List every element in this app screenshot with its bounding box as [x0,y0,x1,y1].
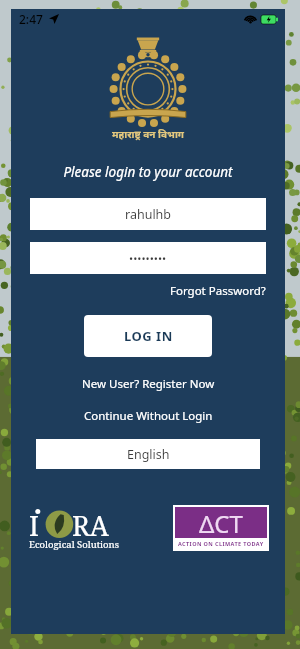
button[interactable]: Continue Without Login [76,405,221,427]
button[interactable]: ••••••••• [30,242,266,274]
staticText: I [29,507,39,544]
staticText: RA [72,507,109,544]
button[interactable]: Forgot Password? [167,281,269,301]
staticText: Forgot Password? [170,283,266,299]
staticText: LOG IN [124,327,173,345]
staticText: 2:47 [19,11,43,27]
button[interactable]: English [36,439,260,469]
staticText: ••••••••• [129,251,167,266]
staticText: ACTION ON CLIMATE TODAY [178,540,264,547]
button[interactable]: New User? Register Now [74,373,223,395]
staticText: New User? Register Now [82,376,215,392]
button[interactable]: LOG IN [84,315,212,357]
staticText: Please login to your account [63,163,233,181]
button[interactable]: rahulhb [30,198,266,230]
staticText: ΔCT [199,507,243,538]
staticText: Ecological Solutions [29,538,119,551]
staticText: महाराष्ट्र वन विभाग [112,127,184,141]
staticText: Continue Without Login [84,408,213,424]
staticText: rahulhb [125,206,172,223]
staticText: English [127,446,170,463]
